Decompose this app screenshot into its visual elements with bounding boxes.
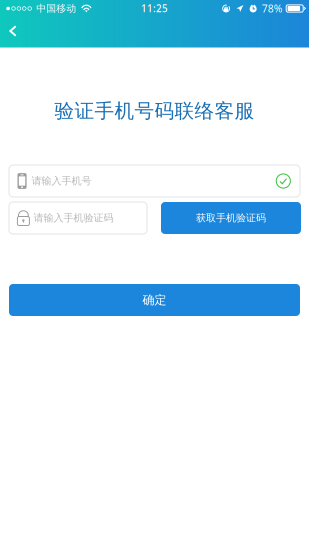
staticText: 确定 <box>142 292 166 307</box>
staticText: 中国移动 <box>36 2 76 15</box>
staticText: 验证手机号码联络客服 <box>54 99 254 123</box>
staticText: 78% <box>262 1 283 16</box>
button[interactable]: 获取手机验证码 <box>161 202 301 234</box>
button[interactable]: 请输入手机号 <box>9 165 300 197</box>
staticText: 11:25 <box>141 2 168 15</box>
button[interactable]: 确定 <box>9 284 300 316</box>
button[interactable]: Back <box>0 17 26 45</box>
staticText: 获取手机验证码 <box>196 212 266 224</box>
staticText: 请输入手机号 <box>32 175 92 187</box>
staticText: 请输入手机验证码 <box>33 212 113 224</box>
button[interactable]: 请输入手机验证码 <box>9 202 147 234</box>
